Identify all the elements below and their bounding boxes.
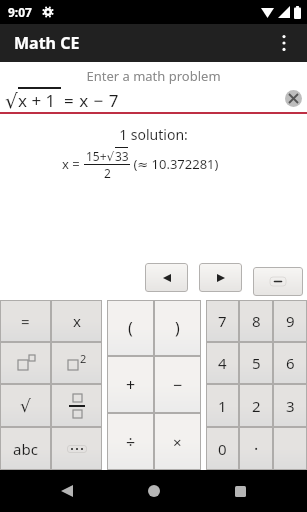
button[interactable]: 2 bbox=[51, 342, 102, 384]
staticText: √ bbox=[5, 89, 18, 112]
staticText: 4 bbox=[218, 353, 227, 373]
staticText: ( bbox=[128, 317, 133, 339]
staticText: Math CE bbox=[14, 32, 80, 54]
button[interactable]: √ bbox=[0, 384, 51, 427]
staticText: x + 1 bbox=[18, 89, 56, 112]
staticText: x bbox=[73, 311, 81, 331]
staticText: 7 bbox=[218, 311, 227, 331]
button[interactable]: 1 bbox=[206, 384, 239, 427]
button[interactable]: − bbox=[154, 356, 201, 413]
staticText: 3 bbox=[286, 396, 295, 416]
staticText: ) bbox=[175, 317, 180, 339]
button[interactable]: × bbox=[154, 413, 201, 470]
staticText: 2 bbox=[252, 396, 261, 416]
button[interactable] bbox=[51, 427, 102, 470]
button[interactable] bbox=[0, 342, 51, 384]
button[interactable]: ( bbox=[107, 300, 154, 356]
button[interactable]: + bbox=[107, 356, 154, 413]
button[interactable] bbox=[199, 263, 242, 292]
staticText: 0 bbox=[218, 439, 227, 459]
staticText: 9 bbox=[286, 311, 295, 331]
staticText: 15+√ bbox=[86, 148, 115, 164]
staticText: 2 bbox=[80, 351, 87, 366]
button[interactable]: 5 bbox=[239, 342, 273, 384]
staticText: 1 solution: bbox=[0, 125, 307, 144]
button[interactable] bbox=[197, 470, 284, 512]
staticText: (≈ 10.372281) bbox=[130, 155, 219, 173]
staticText: 2 bbox=[104, 165, 111, 181]
button[interactable]: 9 bbox=[273, 300, 307, 342]
button[interactable]: ÷ bbox=[107, 413, 154, 470]
button[interactable] bbox=[273, 427, 307, 470]
button[interactable] bbox=[23, 470, 110, 512]
staticText: − bbox=[173, 374, 183, 396]
button[interactable]: 7 bbox=[206, 300, 239, 342]
staticText: ÷ bbox=[126, 431, 136, 453]
staticText: Enter a math problem bbox=[0, 67, 307, 85]
button[interactable] bbox=[110, 470, 197, 512]
staticText: 6 bbox=[286, 353, 295, 373]
staticText: + bbox=[126, 374, 136, 396]
staticText: 5 bbox=[252, 353, 261, 373]
staticText: = bbox=[21, 311, 30, 331]
staticText: abc bbox=[13, 439, 38, 459]
button[interactable]: ) bbox=[154, 300, 201, 356]
button[interactable]: 4 bbox=[206, 342, 239, 384]
button[interactable]: 3 bbox=[273, 384, 307, 427]
button[interactable]: 0 bbox=[206, 427, 239, 470]
staticText: 9:07 bbox=[8, 4, 32, 20]
button[interactable] bbox=[145, 263, 188, 292]
staticText: × bbox=[173, 432, 182, 452]
button[interactable]: 2 bbox=[239, 384, 273, 427]
staticText: 1 bbox=[218, 396, 227, 416]
button[interactable] bbox=[269, 28, 299, 58]
staticText: x = bbox=[62, 155, 84, 173]
button[interactable]: 8 bbox=[239, 300, 273, 342]
button[interactable] bbox=[285, 90, 302, 107]
button[interactable] bbox=[253, 267, 303, 296]
button[interactable] bbox=[51, 384, 102, 427]
staticText: · bbox=[254, 438, 259, 460]
staticText: = x − 7 bbox=[64, 89, 119, 112]
button[interactable]: 6 bbox=[273, 342, 307, 384]
button[interactable]: abc bbox=[0, 427, 51, 470]
staticText: 8 bbox=[252, 311, 261, 331]
staticText: 33 bbox=[115, 148, 129, 164]
button[interactable]: = bbox=[0, 300, 51, 342]
button[interactable]: · bbox=[239, 427, 273, 470]
staticText: √ bbox=[20, 396, 31, 416]
button[interactable]: x bbox=[51, 300, 102, 342]
